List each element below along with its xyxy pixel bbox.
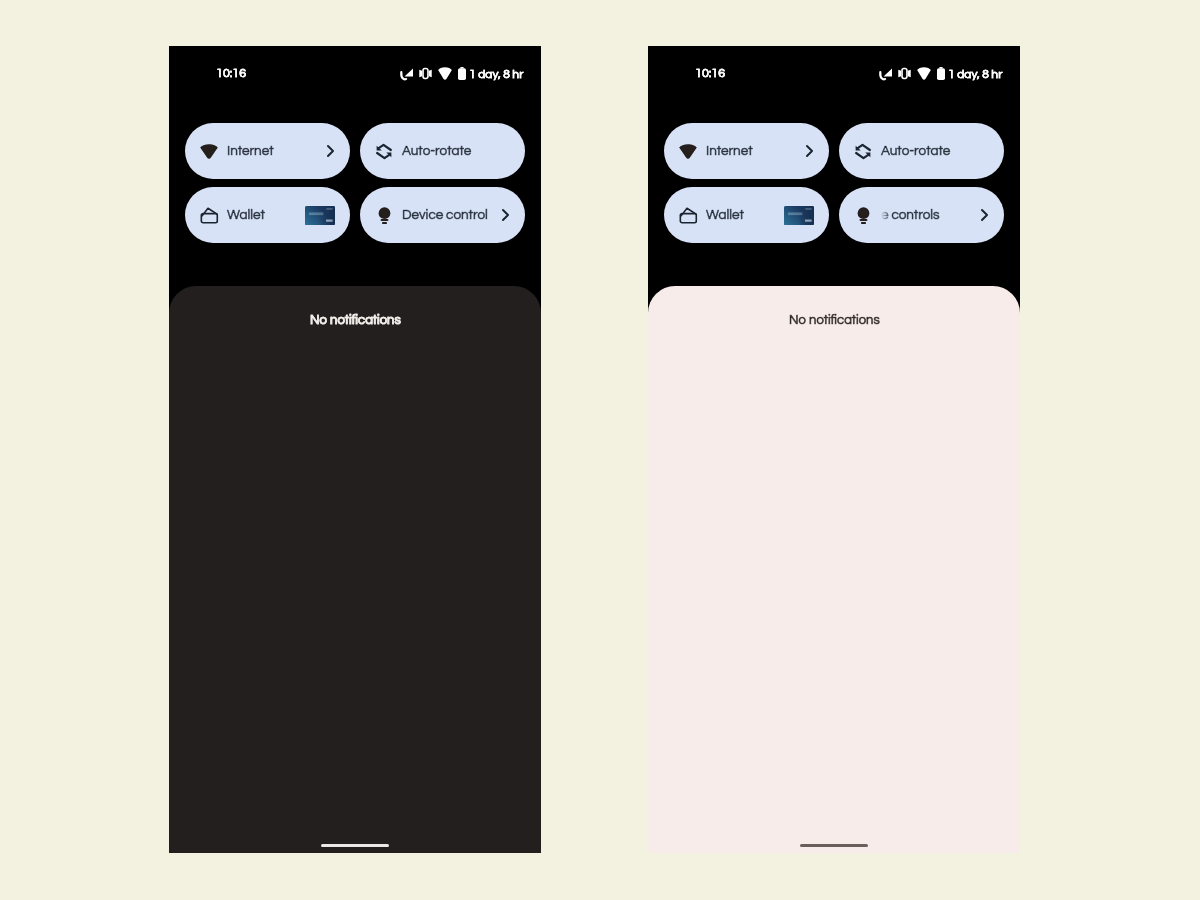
staticText: Internet <box>706 144 753 158</box>
staticText: No notifications <box>789 313 880 326</box>
other: Call forwarding <box>879 68 892 80</box>
other: Wi-Fi signal full <box>917 67 931 80</box>
staticText: 10:16 <box>695 67 726 80</box>
button[interactable]: Wallet <box>185 187 350 243</box>
staticText: e controls <box>881 208 940 222</box>
staticText: No notifications <box>310 313 401 326</box>
button[interactable]: Auto-rotate <box>839 123 1004 179</box>
staticText: Device control <box>402 208 488 222</box>
staticText: 10:16 <box>216 67 247 80</box>
staticText: 1 day, 8 hr <box>948 68 1003 80</box>
staticText: Device control <box>402 208 488 222</box>
staticText: Wallet <box>706 208 744 222</box>
staticText: Auto-rotate <box>402 144 472 158</box>
other: Vibrate mode <box>419 68 432 79</box>
staticText: 1 day, 8 hr <box>948 68 1003 80</box>
staticText: Wallet <box>227 208 265 222</box>
button[interactable]: Internet <box>185 123 350 179</box>
staticText: Wallet <box>706 208 744 222</box>
staticText: Wallet <box>227 208 265 222</box>
staticText: No notifications <box>310 313 401 326</box>
staticText: Internet <box>706 144 753 158</box>
staticText: 1 day, 8 hr <box>469 68 524 80</box>
staticText: 10:16 <box>695 67 726 80</box>
other: Battery <box>937 67 945 80</box>
staticText: e controls <box>881 208 940 222</box>
staticText: Internet <box>227 144 274 158</box>
staticText: Auto-rotate <box>402 144 472 158</box>
button[interactable]: Wallet <box>664 187 829 243</box>
other: Battery <box>458 67 466 80</box>
staticText: Auto-rotate <box>881 144 951 158</box>
staticText: 1 day, 8 hr <box>469 68 524 80</box>
other: Vibrate mode <box>898 68 911 79</box>
other: Call forwarding <box>400 68 413 80</box>
other: Wi-Fi signal full <box>438 67 452 80</box>
staticText: Auto-rotate <box>881 144 951 158</box>
staticText: Internet <box>227 144 274 158</box>
button[interactable]: Auto-rotate <box>360 123 525 179</box>
button[interactable]: e controls <box>839 187 1004 243</box>
staticText: No notifications <box>789 313 880 326</box>
button[interactable]: Device control <box>360 187 525 243</box>
staticText: 10:16 <box>216 67 247 80</box>
button[interactable]: Internet <box>664 123 829 179</box>
